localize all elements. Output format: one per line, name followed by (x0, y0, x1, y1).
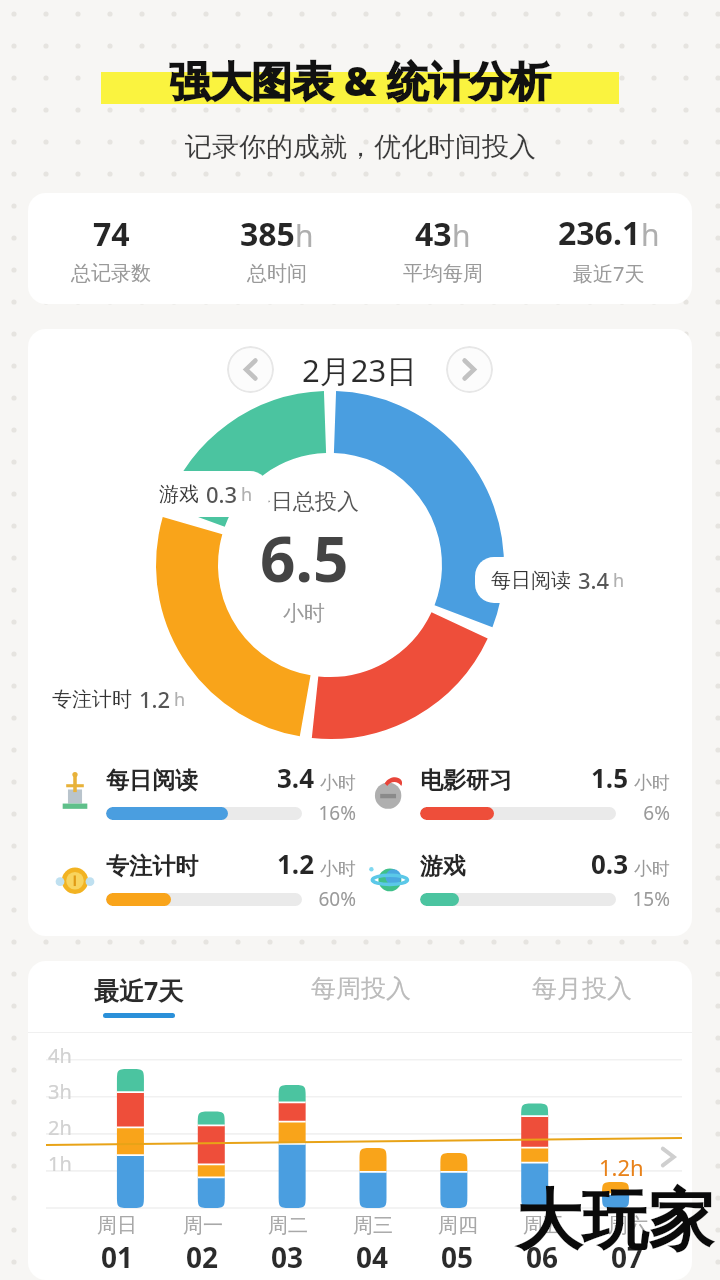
button[interactable]: 每周投入 (250, 973, 471, 1010)
staticText: 周二 (268, 1213, 308, 1238)
staticText: 0.3 (591, 846, 629, 881)
staticText: 1.2 (139, 684, 171, 714)
staticText: 游戏 (159, 482, 199, 507)
staticText: h (295, 215, 314, 256)
staticText: 6.5 (260, 516, 349, 600)
staticText: 1.2h (599, 1152, 644, 1182)
staticText: 小时 (283, 600, 325, 626)
staticText: 02 (186, 1238, 219, 1276)
button[interactable]: 每日阅读 (46, 760, 360, 826)
staticText: 1.2 (277, 846, 315, 881)
staticText: 每日阅读 (491, 568, 571, 593)
button[interactable]: 专注计时 (36, 676, 202, 722)
staticText: h (174, 687, 186, 712)
staticText: 周六 (608, 1213, 648, 1238)
staticText: 04 (356, 1238, 389, 1276)
button[interactable]: 游戏 (143, 471, 269, 517)
staticText: 15% (624, 886, 670, 912)
staticText: 3.4 (578, 565, 610, 595)
staticText: 03 (271, 1238, 304, 1276)
staticText: 每周投入 (311, 973, 411, 1004)
staticText: 每月投入 (532, 973, 632, 1004)
staticText: 60% (310, 886, 356, 912)
staticText: 74 (93, 212, 130, 256)
staticText: 专注计时 (52, 687, 132, 712)
staticText: 总记录数 (71, 261, 151, 286)
staticText: 小时 (634, 858, 670, 881)
staticText: 平均每周 (403, 261, 483, 286)
staticText: h (452, 215, 471, 256)
staticText: 05 (441, 1238, 474, 1276)
staticText: 电影研习 (420, 766, 512, 795)
staticText: 最近7天 (94, 973, 184, 1007)
button[interactable]: 电影研习 (360, 760, 674, 826)
button[interactable]: 专注计时 (46, 846, 360, 912)
staticText: 3.4 (277, 760, 315, 795)
button[interactable]: 最近7天 (28, 973, 250, 1018)
staticText: 周五 (523, 1213, 563, 1238)
staticText: 2h (48, 1114, 72, 1141)
staticText: 385 (240, 212, 295, 256)
staticText: 16% (310, 800, 356, 826)
staticText: 每日阅读 (106, 766, 198, 795)
staticText: h (613, 568, 625, 593)
button[interactable]: 每月投入 (471, 973, 692, 1010)
staticText: 强大图表 & 统计分析 (169, 52, 552, 108)
button[interactable]: Next day (446, 346, 493, 393)
staticText: 专注计时 (106, 852, 198, 881)
staticText: 1h (48, 1150, 72, 1177)
staticText: h (641, 214, 660, 255)
staticText: 周日 (97, 1213, 137, 1238)
staticText: h (241, 482, 253, 507)
staticText: 总时间 (247, 261, 307, 286)
button[interactable]: Previous day (227, 346, 274, 393)
staticText: 6% (624, 800, 670, 826)
staticText: 1.5 (591, 760, 629, 795)
button[interactable]: 每日阅读 (475, 557, 641, 603)
staticText: 周一 (183, 1213, 223, 1238)
staticText: 周四 (438, 1213, 478, 1238)
staticText: 记录你的成就，优化时间投入 (185, 130, 536, 164)
staticText: 小时 (320, 772, 356, 795)
staticText: 01 (101, 1238, 134, 1276)
staticText: 06 (526, 1238, 559, 1276)
staticText: 4h (48, 1042, 72, 1069)
staticText: 236.1 (558, 211, 641, 255)
staticText: 小时 (634, 772, 670, 795)
staticText: 周三 (353, 1213, 393, 1238)
staticText: 07 (611, 1238, 644, 1276)
staticText: 43 (415, 212, 452, 256)
staticText: 0.3 (206, 479, 238, 509)
button[interactable]: Next page (648, 1137, 688, 1177)
staticText: 大玩家 (516, 1179, 714, 1262)
button[interactable]: 游戏 (360, 846, 674, 912)
staticText: 最近7天 (573, 260, 645, 287)
staticText: 今日总投入 (249, 488, 359, 516)
staticText: 小时 (320, 858, 356, 881)
staticText: 3h (48, 1078, 72, 1105)
staticText: 2月23日 (302, 349, 418, 391)
staticText: 游戏 (420, 852, 466, 881)
